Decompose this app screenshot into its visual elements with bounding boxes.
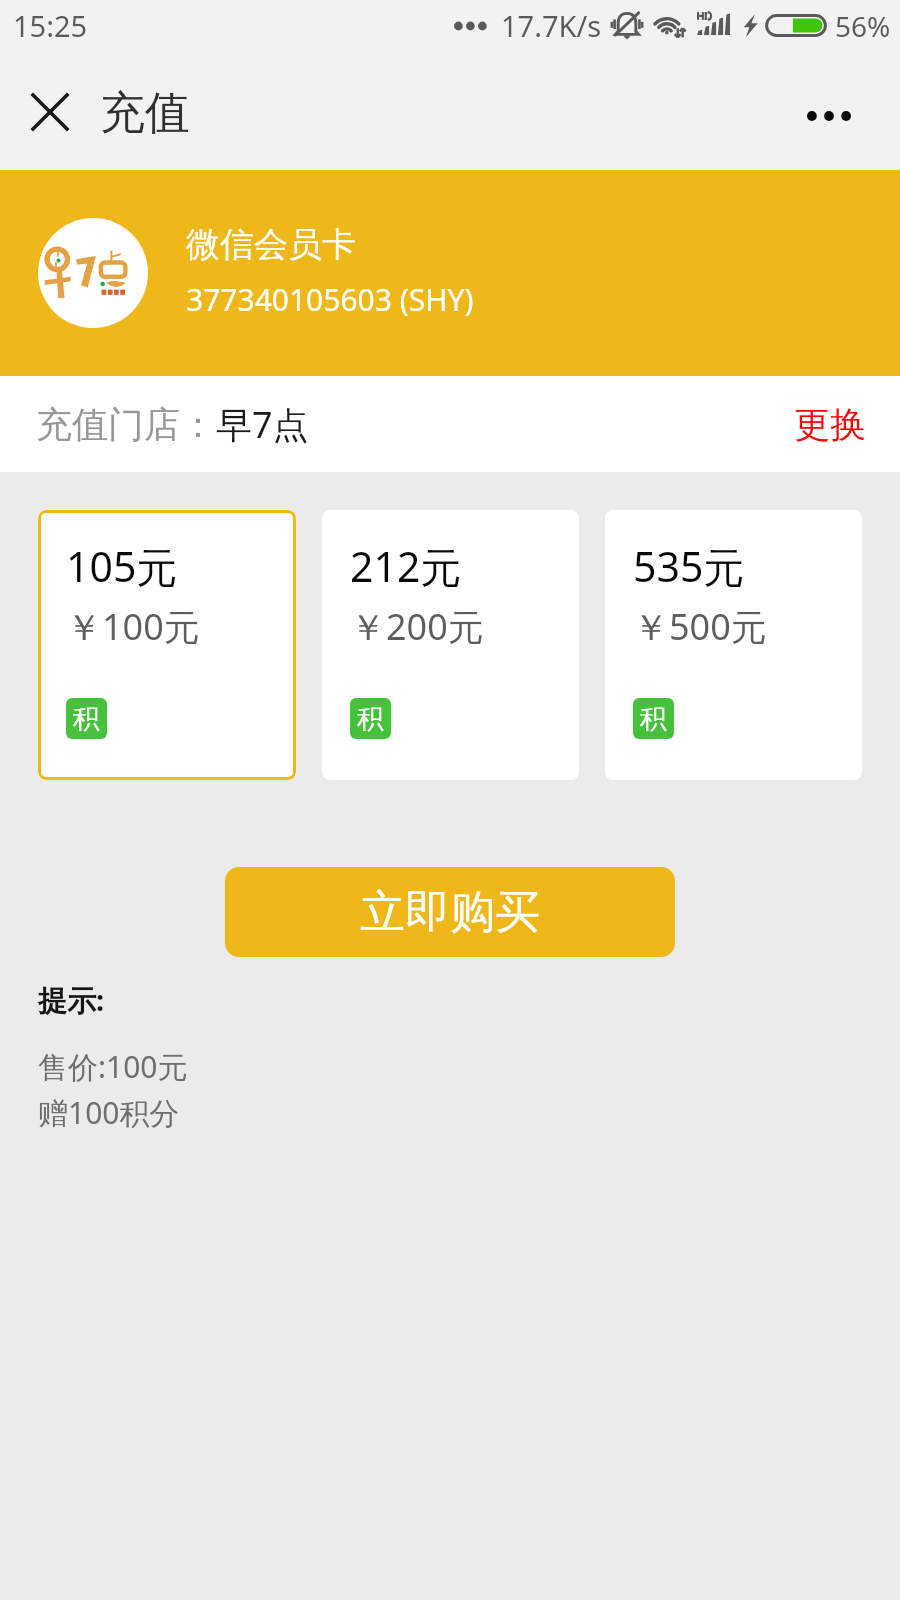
staticText: 微信会员卡 — [186, 223, 356, 266]
button[interactable]: More options — [793, 81, 865, 153]
staticText: ￥500元 — [633, 602, 767, 651]
staticText: 535元 — [633, 538, 745, 594]
staticText: 17.7K/s — [501, 6, 602, 45]
staticText: 积 — [357, 702, 384, 736]
staticText: 105元 — [66, 538, 178, 594]
staticText: 充值门店： — [36, 402, 216, 447]
button[interactable]: 212元 — [322, 510, 579, 780]
staticText: 更换 — [794, 402, 866, 447]
staticText: 积 — [640, 702, 667, 736]
button[interactable]: 535元 — [605, 510, 862, 780]
staticText: 提示: — [38, 980, 105, 1020]
staticText: 积 — [73, 702, 100, 736]
button[interactable]: Close — [14, 76, 86, 148]
staticText: 充值 — [100, 85, 190, 142]
staticText: 售价:100元 — [38, 1046, 188, 1087]
staticText: 212元 — [350, 538, 462, 594]
staticText: 赠100积分 — [38, 1092, 180, 1133]
button[interactable]: 105元 — [38, 510, 296, 780]
staticText: 56% — [835, 7, 891, 45]
button[interactable]: 更换 — [760, 376, 900, 472]
button[interactable]: 立即购买 — [225, 867, 675, 957]
staticText: 立即购买 — [360, 884, 540, 941]
staticText: 377340105603 (SHY) — [186, 279, 474, 320]
staticText: 15:25 — [13, 6, 88, 45]
staticText: 早7点 — [216, 400, 309, 449]
staticText: ￥200元 — [350, 602, 484, 651]
staticText: ￥100元 — [66, 602, 200, 651]
